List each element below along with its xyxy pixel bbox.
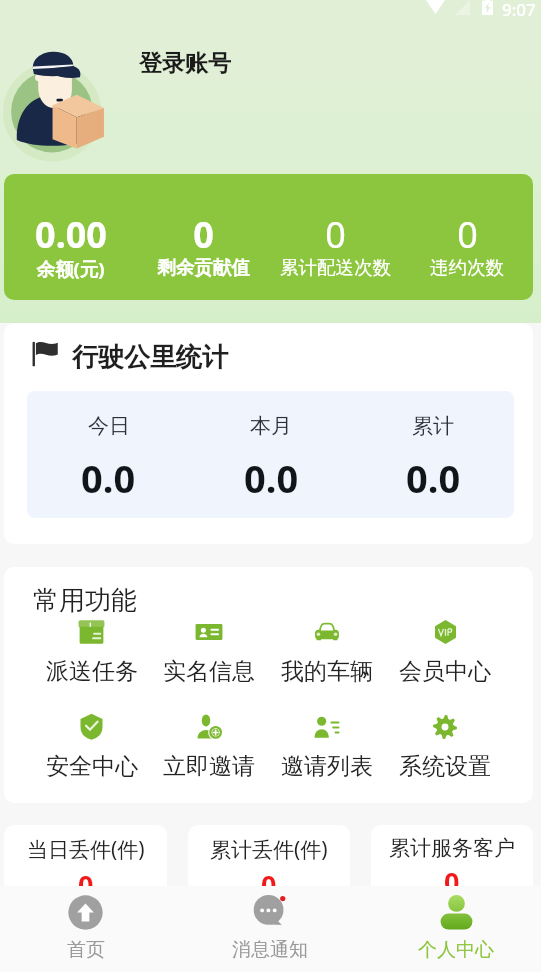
button[interactable]: 立即邀请 — [150, 713, 268, 781]
button[interactable]: 实名信息 — [150, 618, 268, 686]
staticText: 首页 — [67, 938, 105, 962]
staticText: 累计丢件(件) — [210, 835, 328, 864]
staticText: 本月 — [250, 413, 292, 439]
staticText: 0 — [325, 210, 346, 259]
button[interactable]: 邀请列表 — [268, 713, 386, 781]
staticText: 累计配送次数 — [280, 256, 391, 279]
button[interactable]: Home — [0, 886, 181, 972]
button[interactable]: 系统设置 — [386, 713, 504, 781]
staticText: 0.00 — [35, 210, 107, 259]
staticText: 0.0 — [406, 452, 461, 504]
staticText: 消息通知 — [232, 938, 308, 962]
staticText: 违约次数 — [430, 256, 504, 279]
button[interactable]: 累计 — [352, 391, 514, 518]
button[interactable]: 本月 — [190, 391, 352, 518]
button[interactable]: 0 — [137, 174, 269, 300]
staticText: 派送任务 — [46, 657, 138, 686]
button[interactable]: 今日 — [27, 391, 190, 518]
staticText: 实名信息 — [163, 657, 255, 686]
staticText: 今日 — [88, 413, 130, 439]
staticText: 个人中心 — [418, 938, 494, 962]
button[interactable]: 0 — [269, 174, 401, 300]
staticText: 0 — [193, 210, 214, 259]
staticText: 我的车辆 — [281, 657, 373, 686]
button[interactable]: Messages — [181, 886, 361, 972]
staticText: 系统设置 — [399, 752, 491, 781]
button[interactable]: 会员中心 — [386, 618, 504, 686]
staticText: 剩余贡献值 — [157, 256, 250, 279]
staticText: 9:07 — [502, 0, 536, 16]
button[interactable]: 0.00 — [4, 174, 137, 300]
button[interactable]: 累计服务客户 — [371, 825, 533, 905]
staticText: 0 — [261, 866, 277, 903]
staticText: 0 — [78, 866, 94, 903]
staticText: 0 — [457, 210, 478, 259]
staticText: 行驶公里统计 — [72, 341, 228, 374]
staticText: 立即邀请 — [163, 752, 255, 781]
staticText: 会员中心 — [399, 657, 491, 686]
staticText: 余额(元) — [36, 256, 105, 281]
staticText: 当日丢件(件) — [27, 835, 145, 864]
staticText: 0 — [444, 863, 460, 900]
staticText: 累计服务客户 — [389, 835, 515, 861]
staticText: 0.0 — [81, 452, 136, 504]
button[interactable]: 派送任务 — [33, 618, 150, 686]
button[interactable]: 当日丢件(件) — [4, 825, 167, 905]
button[interactable]: 我的车辆 — [268, 618, 386, 686]
staticText: 安全中心 — [46, 752, 138, 781]
staticText: 常用功能 — [33, 584, 137, 617]
button[interactable]: 累计丢件(件) — [188, 825, 350, 905]
button[interactable]: 安全中心 — [33, 713, 150, 781]
staticText: 邀请列表 — [281, 752, 373, 781]
staticText: 累计 — [412, 413, 454, 439]
staticText: 0.0 — [244, 452, 299, 504]
button[interactable]: Profile — [361, 886, 541, 972]
button[interactable]: 0 — [401, 174, 533, 300]
button[interactable]: 登录账号 — [139, 49, 231, 78]
